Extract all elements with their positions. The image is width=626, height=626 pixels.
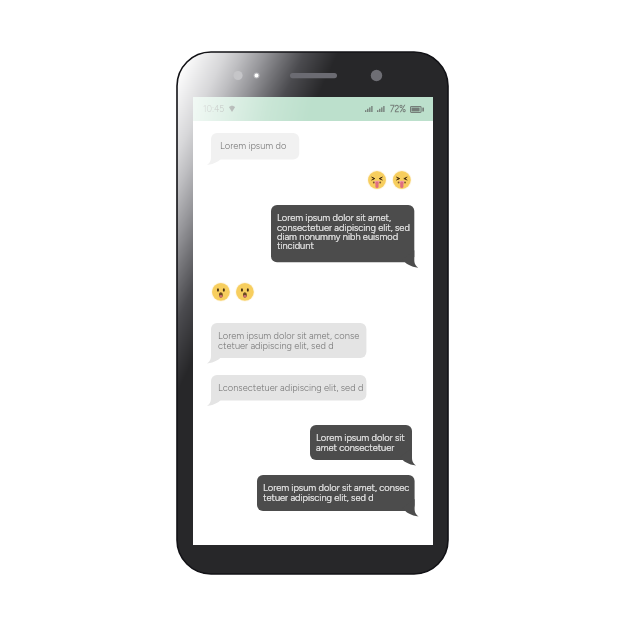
button[interactable]: Lorem ipsum dolor sit amet, consectetuer… — [271, 205, 424, 272]
button[interactable]: Reaction surprised — [211, 282, 255, 302]
staticText: Lorem ipsum dolor sit amet, conse ctetue… — [218, 330, 360, 351]
button[interactable]: Lorem ipsum do — [211, 133, 309, 170]
staticText: Lconsectetuer adipiscing elit, sed d — [218, 382, 364, 393]
button[interactable]: Lorem ipsum dolor sit amet, conse ctetue… — [211, 323, 376, 368]
staticText: Lorem ipsum dolor sit amet, consec tetue… — [263, 482, 410, 503]
button[interactable]: Reaction tongue out — [367, 170, 412, 190]
staticText: Lorem ipsum do — [220, 140, 287, 151]
staticText: 10:45 — [203, 104, 225, 114]
button[interactable]: Lorem ipsum dolor sit amet consectetuer — [310, 425, 422, 470]
staticText: 72% — [390, 104, 406, 114]
staticText: Lorem ipsum dolor sit amet consectetuer — [316, 432, 405, 453]
staticText: Lorem ipsum dolor sit amet, consectetuer… — [277, 212, 410, 251]
button[interactable]: Lorem ipsum dolor sit amet, consec tetue… — [257, 475, 425, 521]
button[interactable]: Lconsectetuer adipiscing elit, sed d — [211, 375, 376, 410]
